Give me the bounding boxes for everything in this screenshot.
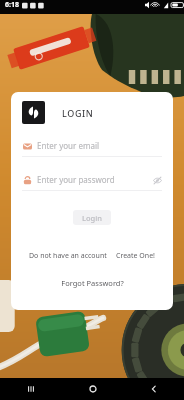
button[interactable]: Back: [123, 378, 184, 400]
staticText: 6:18: [5, 0, 19, 10]
staticText: LOGIN: [62, 107, 94, 119]
staticText: Enter your email: [37, 140, 100, 151]
button[interactable]: Recent apps: [0, 378, 62, 400]
button[interactable]: Password: [22, 174, 162, 191]
staticText: Create One!: [116, 251, 155, 261]
button[interactable]: Forgot Password?: [61, 278, 124, 288]
staticText: Do not have an account: [29, 251, 107, 261]
staticText: Forgot Password?: [61, 278, 124, 288]
button[interactable]: Toggle password visibility: [152, 175, 162, 185]
button[interactable]: Home: [62, 378, 123, 400]
button[interactable]: Email: [22, 140, 162, 157]
button[interactable]: Login: [73, 210, 111, 225]
staticText: Enter your password: [37, 174, 115, 185]
button[interactable]: Create One!: [116, 251, 155, 261]
staticText: Login: [82, 213, 102, 223]
